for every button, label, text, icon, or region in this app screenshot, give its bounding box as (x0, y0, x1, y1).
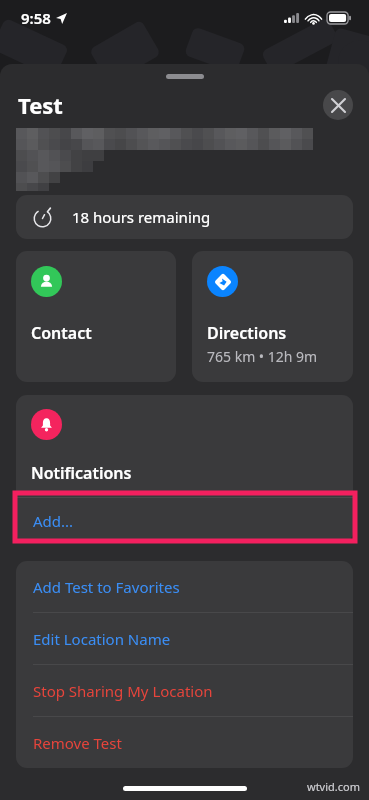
button[interactable]: 18 hours remaining (16, 195, 353, 239)
staticText: Add... (33, 511, 74, 531)
staticText: Add Test to Favorites (33, 577, 180, 597)
button[interactable]: Edit Location Name (16, 613, 353, 664)
button[interactable]: Directions (192, 251, 353, 382)
staticText: 765 km • 12h 9m (207, 347, 318, 366)
button[interactable]: Add Test to Favorites (16, 561, 353, 612)
staticText: Contact (31, 322, 92, 344)
staticText: Directions (207, 322, 287, 344)
button[interactable]: Stop Sharing My Location (16, 665, 353, 716)
staticText: Edit Location Name (33, 629, 171, 649)
button[interactable]: Add... (16, 498, 353, 543)
button[interactable]: Contact (16, 251, 176, 382)
staticText: Remove Test (33, 733, 122, 753)
button[interactable]: Notifications (16, 395, 353, 497)
staticText: 9:58 (21, 8, 51, 28)
staticText: Test (18, 90, 63, 120)
staticText: 18 hours remaining (72, 207, 211, 227)
staticText: Notifications (31, 462, 132, 484)
staticText: wtvid.com (307, 779, 360, 794)
staticText: Stop Sharing My Location (33, 681, 213, 701)
button[interactable]: Close (323, 90, 353, 120)
button[interactable]: Remove Test (16, 717, 353, 768)
